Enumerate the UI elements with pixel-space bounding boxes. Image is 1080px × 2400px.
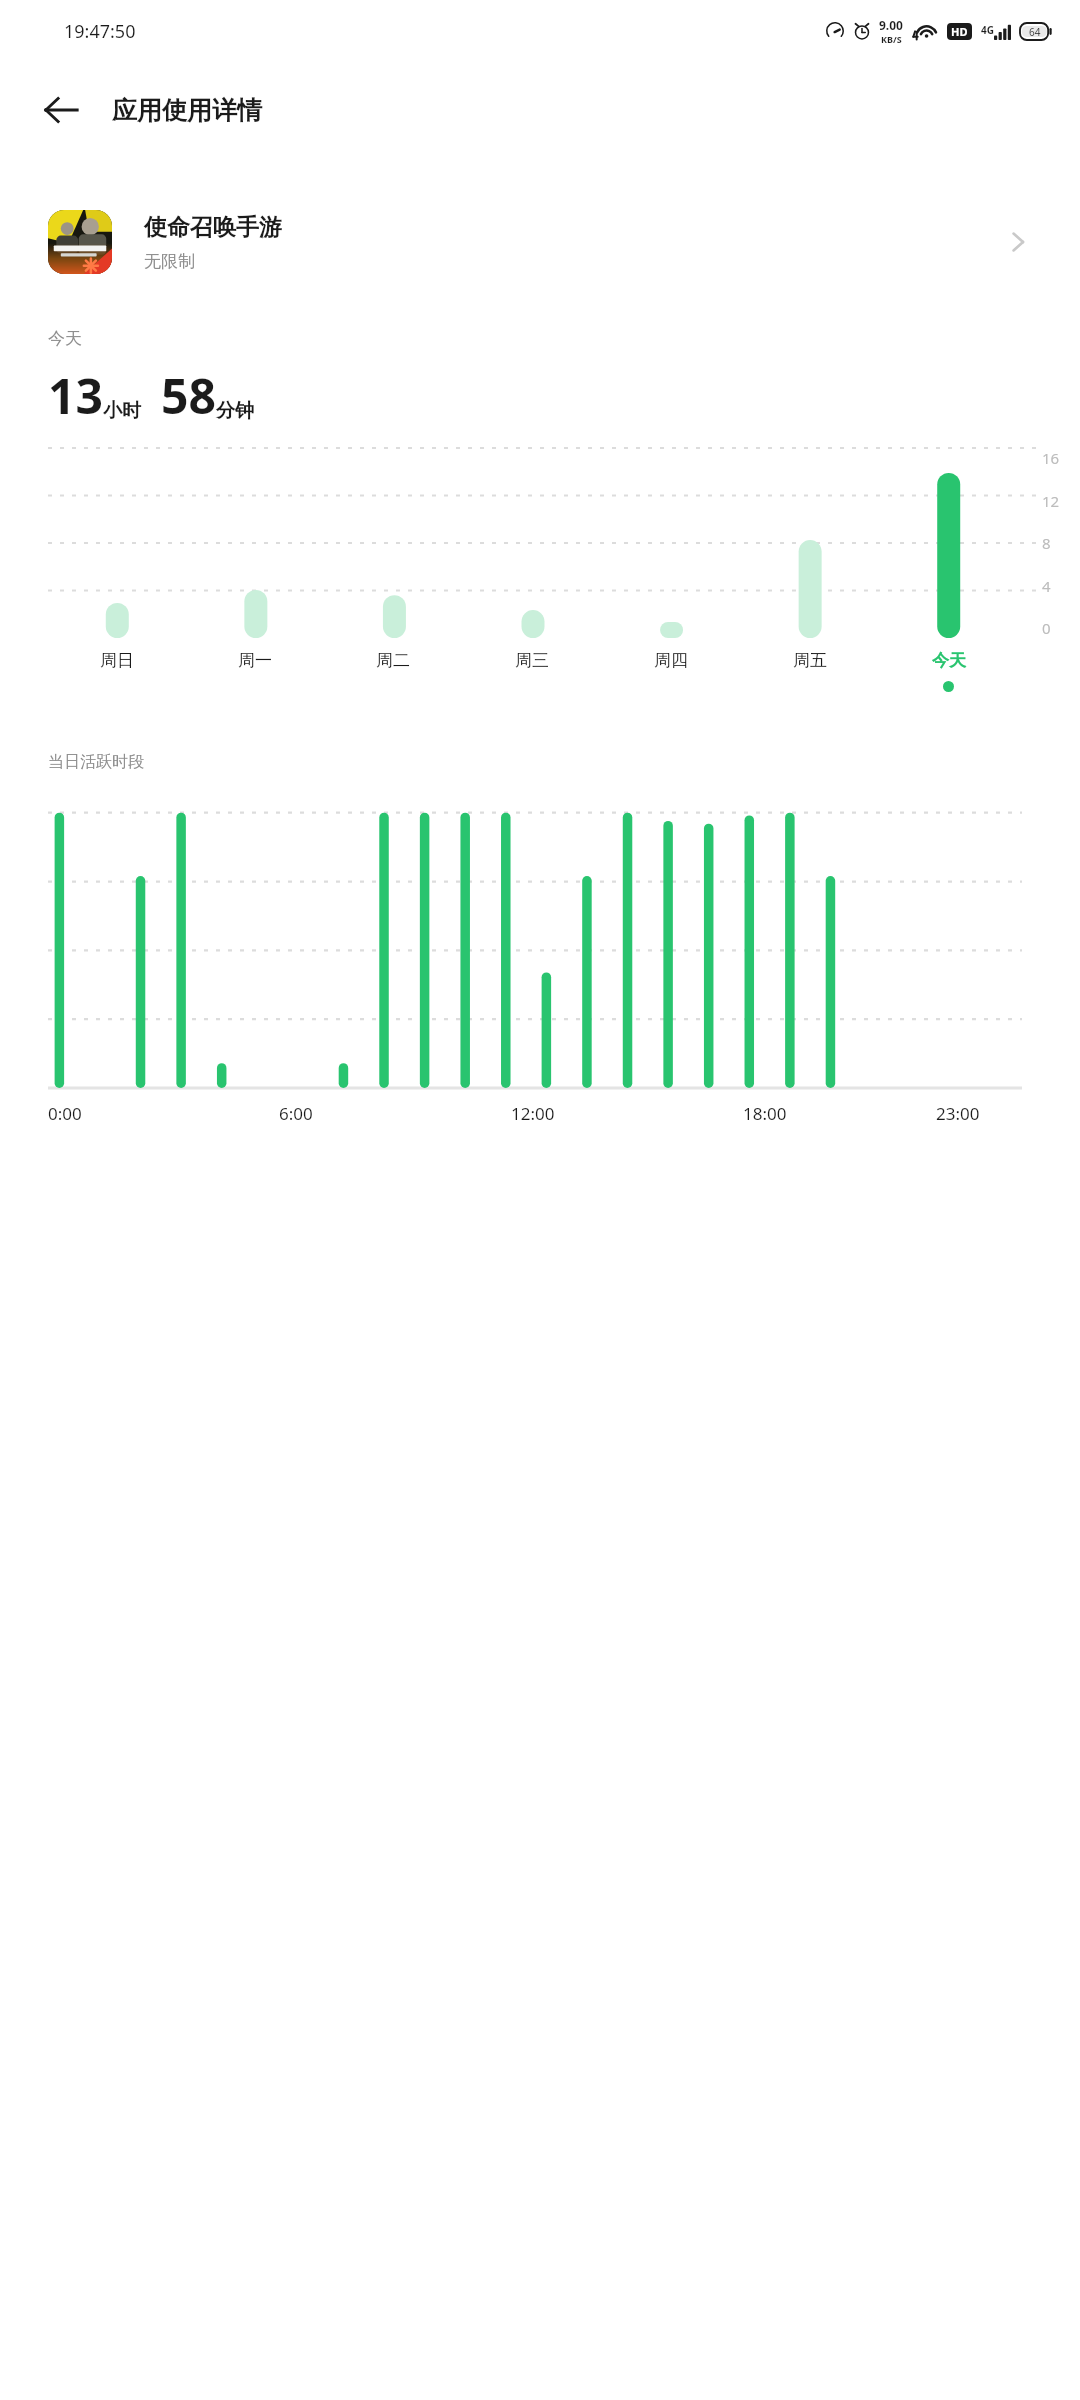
staticText: 今天 (48, 328, 82, 349)
staticText: KB/S (881, 33, 902, 45)
staticText: 周三 (515, 650, 549, 671)
staticText: 18:00 (743, 1102, 936, 1125)
staticText: 16 (1042, 448, 1060, 468)
staticText: 58 (161, 363, 216, 428)
staticText: 无限制 (144, 251, 195, 272)
button[interactable]: 周日 (48, 650, 186, 671)
staticText: 12:00 (511, 1102, 743, 1125)
staticText: 分钟 (216, 399, 254, 423)
button[interactable]: 周二 (324, 650, 462, 671)
staticText: 13 (48, 363, 103, 428)
staticText: 应用使用详情 (112, 95, 262, 126)
button[interactable]: 今天 (879, 650, 1018, 692)
button[interactable]: 周四 (601, 650, 740, 671)
staticText: 64 (1029, 25, 1041, 39)
staticText: 0:00 (48, 1102, 279, 1125)
staticText: 23:00 (936, 1102, 1052, 1125)
button[interactable]: 周一 (186, 650, 324, 671)
staticText: 19:47:50 (64, 19, 136, 44)
staticText: 今天 (932, 650, 966, 671)
button[interactable]: 周五 (740, 650, 879, 671)
staticText: 4G (981, 23, 994, 37)
staticText: 使命召唤手游 (144, 213, 282, 242)
staticText: 6:00 (279, 1102, 511, 1125)
staticText: 0 (1042, 618, 1051, 638)
staticText: 周日 (100, 650, 134, 671)
staticText: 周一 (238, 650, 272, 671)
staticText: 周五 (793, 650, 827, 671)
staticText: HD (951, 24, 968, 39)
staticText: 小时 (103, 399, 141, 423)
staticText: 9.00 (879, 17, 903, 33)
button[interactable]: 周三 (462, 650, 601, 671)
button[interactable]: 使命召唤手游 (0, 200, 1080, 284)
staticText: 当日活跃时段 (48, 752, 144, 772)
staticText: 12 (1042, 491, 1060, 511)
staticText: 周二 (376, 650, 410, 671)
staticText: 周四 (654, 650, 688, 671)
staticText: 8 (1042, 533, 1051, 553)
staticText: 4 (1042, 576, 1051, 596)
button[interactable]: 返回 (32, 81, 90, 139)
